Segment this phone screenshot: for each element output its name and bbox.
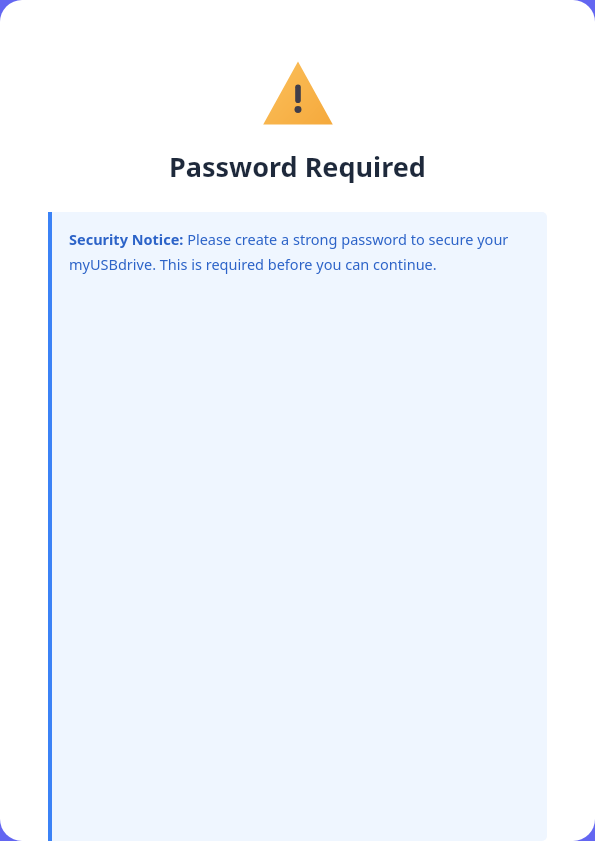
staticText: Password Required (169, 148, 426, 185)
staticText: Security Notice: Please create a strong … (69, 229, 533, 274)
button[interactable]: Security Notice: Please create a strong … (48, 212, 547, 841)
other: Warning (265, 64, 331, 126)
